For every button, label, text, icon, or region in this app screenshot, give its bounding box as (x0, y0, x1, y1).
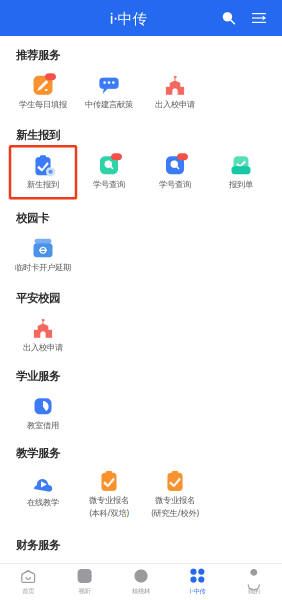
button[interactable]: 在线教学 (10, 464, 76, 516)
staticText: 临时卡开户延期 (15, 262, 71, 273)
button[interactable]: 新生报到 (10, 146, 76, 198)
button[interactable]: 报到单 (208, 146, 274, 198)
staticText: 学号查询 (159, 179, 191, 190)
button[interactable]: 视听 (56, 569, 113, 595)
staticText: 出入校申请 (155, 99, 195, 110)
button[interactable]: 出入校申请 (142, 66, 208, 118)
button[interactable]: i·中传 (169, 569, 226, 595)
button[interactable]: 微专业报名 (142, 464, 208, 516)
button[interactable]: 中传建言献策 (76, 66, 142, 118)
button[interactable]: 首页 (0, 569, 56, 595)
button[interactable]: 学号查询 (76, 146, 142, 198)
button[interactable]: 出入校申请 (10, 309, 76, 361)
staticText: 微专业报名 (155, 495, 195, 505)
staticText: 报到单 (229, 179, 253, 190)
staticText: (研究生/校外) (151, 507, 198, 519)
staticText: 平安校园 (16, 291, 60, 305)
staticText: 微专业报名 (89, 495, 129, 505)
staticText: i·中传 (109, 8, 147, 28)
staticText: 校园卡 (16, 211, 49, 225)
staticText: 我的 (248, 587, 260, 595)
button[interactable]: 学生每日填报 (10, 66, 76, 118)
button[interactable]: 临时卡开户延期 (10, 229, 76, 281)
button[interactable]: 我的 (226, 569, 282, 595)
staticText: 教室借用 (27, 420, 59, 431)
staticText: 核桃林 (132, 587, 150, 595)
button[interactable]: Menu (236, 13, 266, 23)
staticText: i·中传 (189, 587, 205, 595)
staticText: 推荐服务 (16, 48, 60, 62)
staticText: 中传建言献策 (85, 99, 133, 110)
staticText: 首页 (22, 587, 34, 595)
staticText: 视听 (79, 587, 91, 595)
staticText: 新生报到 (16, 128, 60, 142)
staticText: (本科/双培) (89, 507, 128, 519)
button[interactable]: 核桃林 (113, 569, 169, 595)
staticText: 新生报到 (27, 179, 59, 190)
staticText: 出入校申请 (23, 342, 63, 353)
button[interactable]: Search (221, 10, 236, 25)
button[interactable]: 微专业报名 (76, 464, 142, 516)
staticText: 学生每日填报 (19, 99, 67, 110)
staticText: 财务服务 (16, 538, 60, 552)
staticText: 学业服务 (16, 369, 60, 383)
button[interactable]: 教室借用 (10, 387, 76, 439)
staticText: 教学服务 (16, 446, 60, 460)
button[interactable]: 学号查询 (142, 146, 208, 198)
staticText: 学号查询 (93, 179, 125, 190)
staticText: 在线教学 (27, 497, 59, 508)
